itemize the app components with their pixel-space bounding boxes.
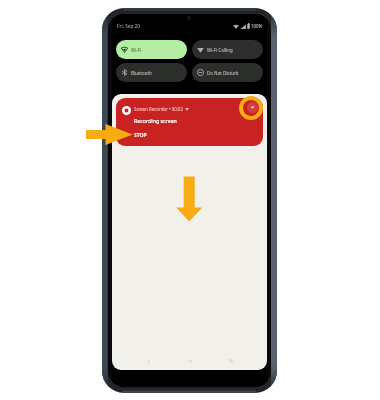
staticText: STOP xyxy=(134,132,147,139)
button[interactable]: Expand xyxy=(247,102,258,113)
staticText: Fri, Sep 20 xyxy=(117,23,140,29)
button[interactable]: STOP xyxy=(134,132,147,139)
staticText: Bluetooth xyxy=(131,70,152,76)
staticText: Do Not Disturb xyxy=(207,70,239,76)
button[interactable]: Bluetooth xyxy=(116,63,187,82)
button[interactable]: Home xyxy=(184,356,196,366)
other: Highlight xyxy=(239,96,263,120)
staticText: 100% xyxy=(251,23,263,29)
staticText: Screen Recorder • 00:02 xyxy=(134,106,183,112)
button[interactable]: Wi-Fi Calling xyxy=(192,40,263,59)
staticText: Wi-Fi xyxy=(131,47,142,53)
button[interactable]: Back xyxy=(142,356,154,366)
staticText: Wi-Fi Calling xyxy=(207,47,233,53)
button[interactable]: Recents xyxy=(225,356,237,366)
staticText: Recording screen xyxy=(134,117,177,124)
button[interactable]: Do Not Disturb xyxy=(192,63,263,82)
button[interactable]: Wi-Fi xyxy=(116,40,187,59)
